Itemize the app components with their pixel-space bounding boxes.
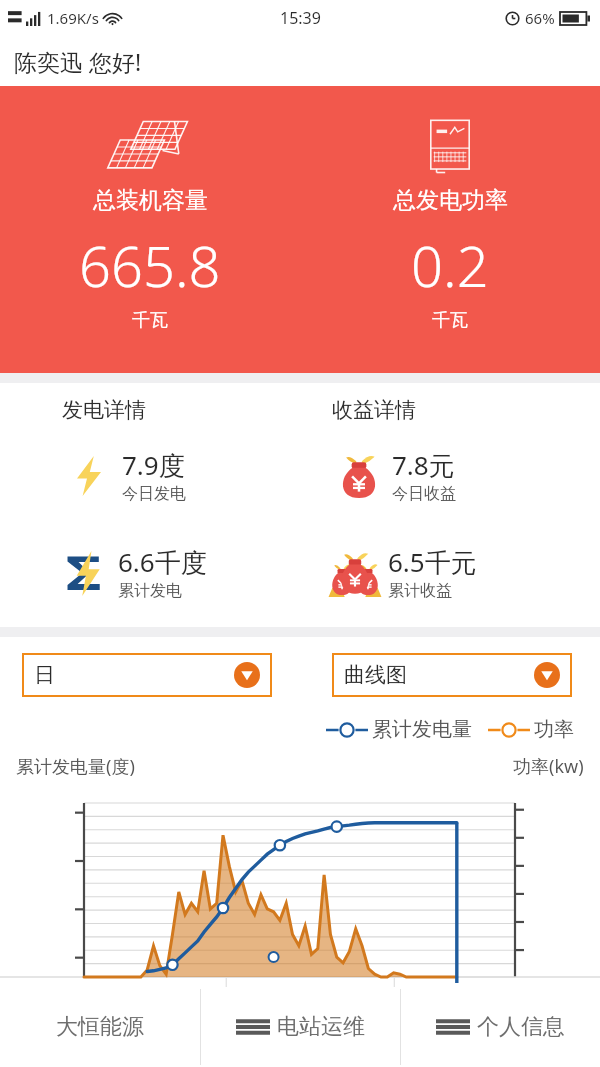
staticText: 0.2 xyxy=(411,227,489,303)
staticText: 曲线图 xyxy=(344,662,407,688)
button[interactable]: 电站运维 xyxy=(201,987,400,1067)
staticText: 日 xyxy=(34,662,55,688)
staticText: 功率 xyxy=(534,717,574,742)
button[interactable]: 个人信息 xyxy=(401,987,600,1067)
staticText: 总装机容量 xyxy=(93,186,208,215)
staticText: 1.69K/s xyxy=(47,8,99,28)
staticText: 15:39 xyxy=(280,7,321,29)
button[interactable]: 6.5千元 xyxy=(328,544,600,601)
button[interactable]: 日 xyxy=(22,653,272,697)
staticText: 功率(kw) xyxy=(513,754,584,779)
staticText: 千瓦 xyxy=(432,309,468,332)
staticText: 66% xyxy=(525,8,555,28)
button[interactable]: 7.9度 xyxy=(62,447,300,504)
staticText: 6.5千元 xyxy=(388,544,477,580)
staticText: 收益详情 xyxy=(332,397,600,423)
staticText: 大恒能源 xyxy=(56,1013,144,1041)
staticText: 累计发电量 xyxy=(372,717,472,742)
staticText: 电站运维 xyxy=(277,1013,365,1041)
staticText: 总发电功率 xyxy=(393,186,508,215)
staticText: 7.8元 xyxy=(392,447,455,483)
staticText: 累计发电 xyxy=(118,581,182,601)
staticText: 今日发电 xyxy=(122,484,186,504)
button[interactable]: 曲线图 xyxy=(332,653,572,697)
staticText: 今日收益 xyxy=(392,484,456,504)
staticText: 陈奕迅 您好! xyxy=(14,46,142,77)
staticText: 累计收益 xyxy=(388,581,452,601)
staticText: 发电详情 xyxy=(62,397,300,423)
staticText: 千瓦 xyxy=(132,309,168,332)
button[interactable]: 大恒能源 xyxy=(0,987,200,1067)
staticText: 累计发电量(度) xyxy=(16,754,135,779)
staticText: 个人信息 xyxy=(477,1013,565,1041)
button[interactable]: 7.8元 xyxy=(332,447,600,504)
staticText: 6.6千度 xyxy=(118,544,207,580)
staticText: 665.8 xyxy=(79,227,221,303)
staticText: 7.9度 xyxy=(122,447,185,483)
button[interactable]: 6.6千度 xyxy=(58,544,300,601)
